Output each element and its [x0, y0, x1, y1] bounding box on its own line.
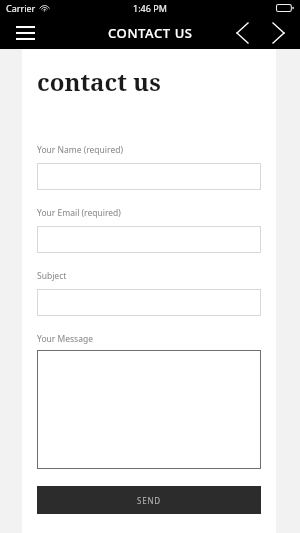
staticText: Your Message [37, 333, 93, 345]
staticText: Subject [37, 270, 67, 282]
button[interactable] [37, 289, 261, 316]
button[interactable]: Open navigation menu [8, 16, 42, 49]
button[interactable] [37, 163, 261, 190]
button[interactable]: Next [260, 16, 296, 49]
button[interactable]: SEND [37, 486, 261, 514]
staticText: Your Name (required) [37, 144, 123, 156]
staticText: 1:46 PM [133, 2, 167, 14]
staticText: contact us [37, 65, 161, 98]
staticText: SEND [137, 495, 161, 506]
button[interactable] [37, 226, 261, 253]
button[interactable] [37, 350, 261, 469]
button[interactable]: Previous [224, 16, 260, 49]
staticText: CONTACT US [108, 24, 193, 42]
staticText: Your Email (required) [37, 207, 121, 219]
staticText: Carrier [6, 2, 36, 14]
